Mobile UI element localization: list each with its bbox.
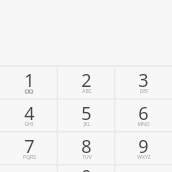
staticText: 4 [24,101,35,126]
staticText: DEF [139,88,149,95]
button[interactable]: Dial 0 [58,165,115,172]
staticText: 3 [138,68,149,93]
button[interactable]: Dial 6 [115,99,172,132]
staticText: TUV [82,154,92,161]
staticText: MNO [137,121,150,128]
button[interactable]: Dial 2 [58,66,115,99]
staticText: 1 [24,68,35,93]
button[interactable]: Dial 1 [0,66,58,99]
staticText: 8 [81,134,92,159]
staticText: 0 [81,164,92,172]
staticText: ABC [82,88,92,95]
button[interactable]: Dial * [0,165,58,172]
staticText: 7 [24,134,35,159]
staticText: 9 [138,134,149,159]
button[interactable]: Dial 4 [0,99,58,132]
staticText: GHI [24,121,34,128]
staticText: 5 [81,101,92,126]
staticText: PQRS [23,154,36,161]
button[interactable]: Dial 9 [115,132,172,165]
staticText: 6 [138,101,149,126]
staticText: 2 [81,68,92,93]
button[interactable]: Dial 5 [58,99,115,132]
button[interactable]: Dial 8 [58,132,115,165]
button[interactable]: Dial 3 [115,66,172,99]
staticText: JKL [83,121,91,128]
button[interactable]: Dial 7 [0,132,58,165]
staticText: WXYZ [137,154,151,161]
